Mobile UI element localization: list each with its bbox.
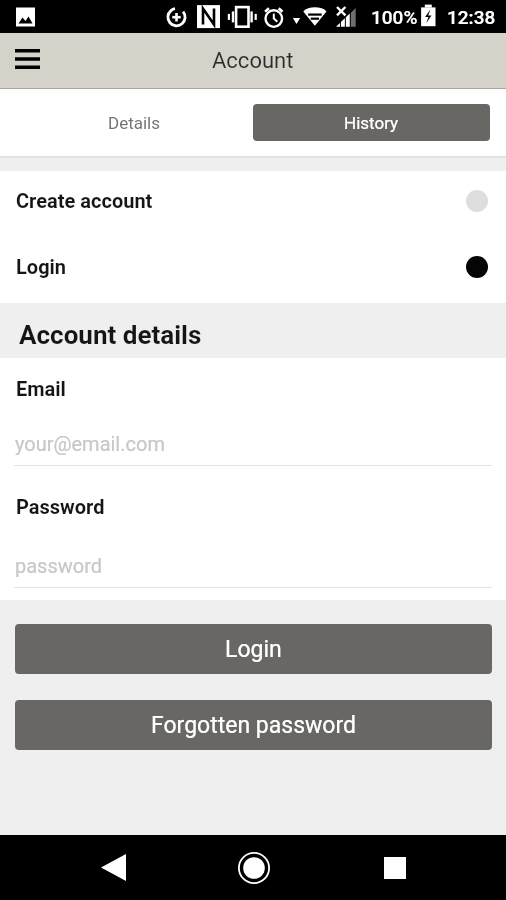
staticText: password [15,554,103,577]
button[interactable]: Home [213,835,294,900]
button[interactable]: Forgotten password [15,700,492,750]
staticText: Create account [16,189,153,212]
button[interactable]: Login [15,624,492,674]
button[interactable]: Create account [0,171,506,237]
staticText: Account [212,48,294,74]
staticText: 12:38 [447,6,496,28]
staticText: 100% [371,6,418,28]
button[interactable]: Login [0,237,506,303]
staticText: Email [16,377,66,400]
staticText: Login [16,255,67,278]
staticText: Password [16,495,105,518]
button[interactable]: Open navigation menu [4,38,50,84]
button[interactable]: Recent apps [354,835,435,900]
staticText: Details [108,113,161,133]
button[interactable]: Back [73,835,154,900]
staticText: Login [225,636,282,663]
button[interactable]: Details [22,104,247,141]
button[interactable]: History [253,104,490,141]
staticText: Forgotten password [151,712,356,739]
staticText: your@email.com [15,432,165,455]
staticText: Account details [19,320,202,350]
staticText: History [344,113,399,133]
